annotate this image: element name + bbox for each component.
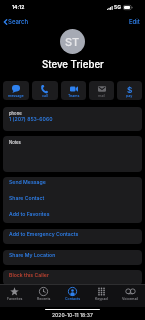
staticText: Block this Caller (9, 272, 49, 278)
staticText: Search (8, 18, 29, 25)
button[interactable]: message (3, 81, 29, 100)
button[interactable]: Send Message (3, 177, 142, 193)
button[interactable]: Keypad (87, 285, 116, 307)
button[interactable]: Contacts (58, 285, 87, 307)
button[interactable]: Favorites (0, 285, 29, 307)
staticText: Favorites (7, 297, 23, 301)
staticText: 5G (114, 4, 121, 10)
staticText: 1 (207) 853-6060 (9, 116, 53, 122)
staticText: Share My Location (9, 252, 56, 258)
button[interactable]: Recents (29, 285, 58, 307)
button[interactable]: Voicemail (116, 285, 145, 307)
staticText: Add to Favorites (9, 211, 50, 217)
staticText: call (42, 94, 48, 98)
button[interactable]: Notes (3, 136, 142, 172)
button[interactable]: Share My Location (3, 250, 142, 265)
button[interactable]: $ (117, 81, 142, 100)
staticText: Edit (129, 18, 140, 25)
staticText: Notes (9, 140, 21, 145)
staticText: Steve Trieber (42, 59, 104, 71)
staticText: phone (9, 111, 22, 116)
button[interactable]: mail (89, 81, 114, 100)
button[interactable]: Edit (125, 16, 144, 27)
staticText: Share Contact (9, 195, 45, 201)
staticText: ST (65, 35, 80, 48)
button[interactable]: Block this Caller (3, 270, 142, 285)
button[interactable]: phone (3, 107, 142, 131)
staticText: message (8, 94, 24, 98)
button[interactable]: call (32, 81, 58, 100)
button[interactable]: Share Contact (3, 193, 142, 209)
staticText: Keypad (95, 297, 108, 301)
staticText: 2020-10-11 18:37 (52, 312, 93, 318)
staticText: Voicemail (122, 297, 139, 301)
button[interactable]: Teams (61, 81, 86, 100)
staticText: pay (126, 94, 133, 98)
staticText: Contacts (65, 297, 81, 301)
button[interactable]: Search (1, 16, 32, 27)
staticText: Add to Emergency Contacts (9, 231, 79, 237)
button[interactable]: Add to Favorites (3, 209, 142, 223)
staticText: Teams (68, 94, 80, 98)
staticText: $ (127, 85, 133, 93)
staticText: mail (98, 94, 106, 98)
staticText: Recents (37, 297, 51, 301)
staticText: 14:12 (12, 4, 25, 10)
button[interactable]: Add to Emergency Contacts (3, 229, 142, 244)
staticText: Send Message (9, 179, 46, 185)
